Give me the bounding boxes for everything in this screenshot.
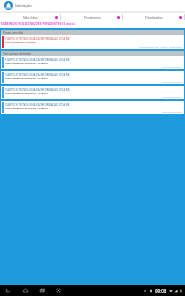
staticText: 07/2020 0003-00 [162,80,182,83]
staticText: TESTE DESENVOLVIMENTO - CLIENTE [5,106,48,109]
staticText: EXIBINDO SOLICITAÇÕES PENDENTES (5 auts.… [1,21,76,25]
button[interactable]: Screenshot [54,286,63,295]
staticText: Não lidos [23,15,38,20]
staticText: PLAYTECH TECNOLOGIA DA INFORMACAO LTDA M… [5,58,70,62]
staticText: Prazo vencido [3,31,24,35]
button[interactable]: Não lidos [0,13,61,21]
button[interactable]: Recents [38,286,47,295]
staticText: 07/2020 0004-00 [162,95,182,98]
staticText: 07/2020 0005-00 [162,110,182,113]
button[interactable]: PLAYTECH TECNOLOGIA DA INFORMACAO LTDA M… [1,56,184,69]
staticText: TESTE DESENVOLVIMENTO [5,40,37,43]
staticText: TESTE DESENVOLVIMENTO - CLIENTE [5,76,48,79]
staticText: PLAYTECH TECNOLOGIA DA INFORMACAO LTDA M… [5,103,70,107]
button[interactable]: Home [21,286,30,295]
button[interactable]: PLAYTECH TECNOLOGIA DA INFORMACAO LTDA M… [1,101,184,114]
staticText: PLAYTECH TECNOLOGIA DA INFORMACAO LTDA M… [5,37,70,41]
staticText: Sem prazo definido [3,52,32,56]
staticText: 07/2020 0001-00 Prazo: 12/08/2020 [139,45,182,48]
staticText: 09:00 [155,288,167,294]
button[interactable]: Back [4,286,13,295]
staticText: TESTE DESENVOLVIMENTO - CLIENTE [5,91,48,94]
staticText: PLAYTECH TECNOLOGIA DA INFORMACAO LTDA M… [5,88,70,92]
staticText: Pendentes [84,15,101,20]
button[interactable]: Finalizados [123,13,185,21]
staticText: Solicitações [15,4,32,8]
button[interactable]: PLAYTECH TECNOLOGIA DA INFORMACAO LTDA M… [1,71,184,84]
staticText: TESTE DESENVOLVIMENTO - CLIENTE [5,61,48,64]
staticText: PLAYTECH TECNOLOGIA DA INFORMACAO LTDA M… [5,73,70,77]
button[interactable]: PLAYTECH TECNOLOGIA DA INFORMACAO LTDA M… [1,86,184,99]
button[interactable]: Pendentes [61,13,123,21]
staticText: 07/2020 0002-00 [162,65,182,68]
staticText: Finalizados [145,15,163,20]
button[interactable]: PLAYTECH TECNOLOGIA DA INFORMACAO LTDA M… [1,35,184,49]
